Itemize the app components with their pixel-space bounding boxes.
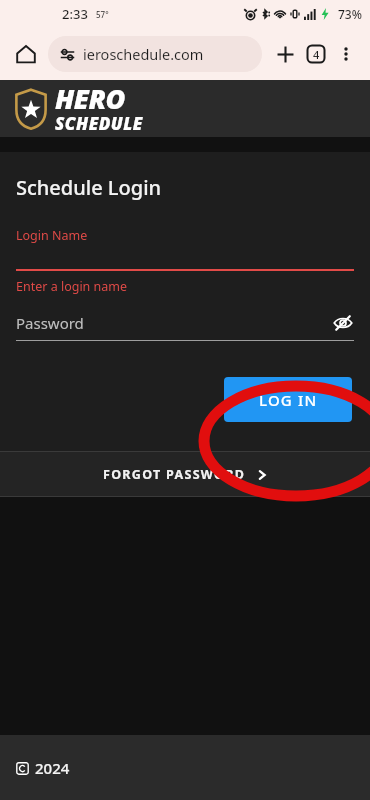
button[interactable]: ieroschedule.com [48, 36, 262, 72]
staticText: 2024 [35, 758, 70, 778]
staticText: LOG IN [259, 390, 318, 410]
staticText: 2:33 [62, 5, 88, 23]
button[interactable]: Tabs, 4 open [300, 38, 332, 70]
staticText: Password [16, 313, 84, 333]
button[interactable]: Show password [332, 312, 354, 334]
staticText: 73% [338, 6, 362, 22]
button[interactable]: LOG IN [224, 377, 352, 422]
button[interactable]: FORGOT PASSWORD [0, 452, 370, 496]
staticText: Enter a login name [16, 278, 128, 295]
staticText: HERO [55, 80, 125, 117]
button[interactable]: New tab [270, 39, 300, 69]
staticText: Schedule Login [16, 174, 162, 201]
staticText: Login Name [16, 227, 88, 244]
staticText: FORGOT PASSWORD [103, 466, 246, 483]
staticText: SCHEDULE [55, 112, 143, 132]
button[interactable]: Home [10, 38, 42, 70]
staticText: 57° [96, 9, 109, 20]
button[interactable]: More options [332, 40, 360, 68]
staticText: 4 [313, 47, 320, 62]
staticText: ieroschedule.com [83, 44, 204, 64]
